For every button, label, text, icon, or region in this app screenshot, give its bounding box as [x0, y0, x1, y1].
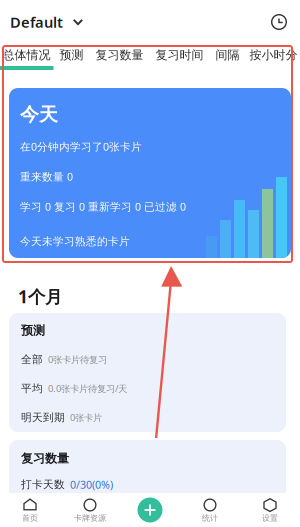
staticText: 1个月: [18, 285, 62, 308]
staticText: 间隔: [215, 48, 239, 62]
button[interactable]: 首页: [0, 493, 60, 527]
button[interactable]: 预测: [53, 44, 89, 70]
staticText: 0张卡片: [70, 411, 102, 424]
staticText: 今天: [20, 103, 58, 126]
staticText: 明天到期: [21, 411, 65, 424]
staticText: 在0分钟内学习了0张卡片: [20, 139, 142, 154]
button[interactable]: 间隔: [209, 44, 245, 70]
button[interactable]: 卡牌资源: [60, 493, 120, 527]
staticText: 0张卡片待复习: [48, 353, 107, 366]
staticText: 统计: [202, 513, 218, 523]
staticText: 预测: [21, 323, 45, 338]
button[interactable]: 统计: [180, 493, 240, 527]
staticText: 0/30(0%): [70, 477, 113, 492]
staticText: 打卡天数: [21, 478, 65, 491]
staticText: 0.0张卡片待复习/天: [48, 382, 127, 395]
staticText: 平均: [21, 382, 43, 395]
staticText: 复习数量: [95, 48, 143, 62]
staticText: 首页: [22, 513, 38, 523]
button[interactable]: History: [271, 0, 300, 44]
button[interactable]: 复习数量: [89, 44, 149, 70]
staticText: 复习数量: [21, 451, 69, 466]
button[interactable]: 按小时分: [245, 44, 300, 70]
button[interactable]: Add: [120, 493, 180, 527]
staticText: 全部: [21, 353, 43, 366]
button[interactable]: 总体情况: [0, 44, 53, 70]
button[interactable]: 设置: [240, 493, 300, 527]
staticText: 今天未学习熟悉的卡片: [20, 235, 130, 248]
staticText: Default: [10, 12, 63, 32]
staticText: 复习时间: [155, 48, 203, 62]
button[interactable]: Default: [0, 0, 91, 44]
staticText: 重来数量 0: [20, 169, 73, 184]
button[interactable]: 复习时间: [149, 44, 209, 70]
staticText: 学习 0 复习 0 重新学习 0 已过滤 0: [20, 199, 186, 214]
staticText: 卡牌资源: [74, 513, 106, 523]
staticText: 总体情况: [2, 48, 50, 62]
staticText: 预测: [59, 48, 83, 62]
staticText: 按小时分: [249, 48, 297, 62]
staticText: 设置: [262, 513, 278, 523]
